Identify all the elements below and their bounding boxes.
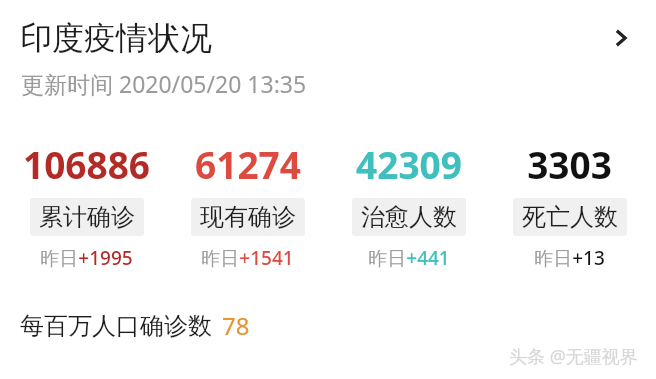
button[interactable]: 61274	[167, 139, 328, 271]
staticText: 更新时间 2020/05/20 13:35	[21, 68, 307, 99]
button[interactable]: 3303	[489, 139, 650, 271]
staticText: 治愈人数	[361, 202, 457, 232]
button[interactable]: 印度疫情状况	[0, 18, 656, 58]
staticText: 42309	[356, 139, 462, 189]
staticText: 61274	[195, 139, 301, 189]
staticText: 106886	[23, 139, 150, 189]
button[interactable]: 106886	[6, 139, 167, 271]
staticText: 昨日+1541	[201, 245, 294, 271]
staticText: 死亡人数	[522, 202, 618, 232]
staticText: 每百万人口确诊数	[20, 311, 212, 341]
staticText: 昨日+441	[368, 245, 450, 271]
staticText: 78	[222, 309, 250, 342]
staticText: 昨日+13	[534, 245, 605, 271]
staticText: 累计确诊	[39, 202, 135, 232]
other: More details	[604, 21, 638, 55]
staticText: 昨日+1995	[40, 245, 133, 271]
staticText: 3303	[527, 139, 612, 189]
button[interactable]: 每百万人口确诊数	[0, 309, 250, 342]
button[interactable]: 42309	[328, 139, 489, 271]
staticText: 头条 @无疆视界	[509, 344, 638, 369]
staticText: 印度疫情状况	[20, 18, 212, 58]
staticText: 现有确诊	[200, 202, 296, 232]
